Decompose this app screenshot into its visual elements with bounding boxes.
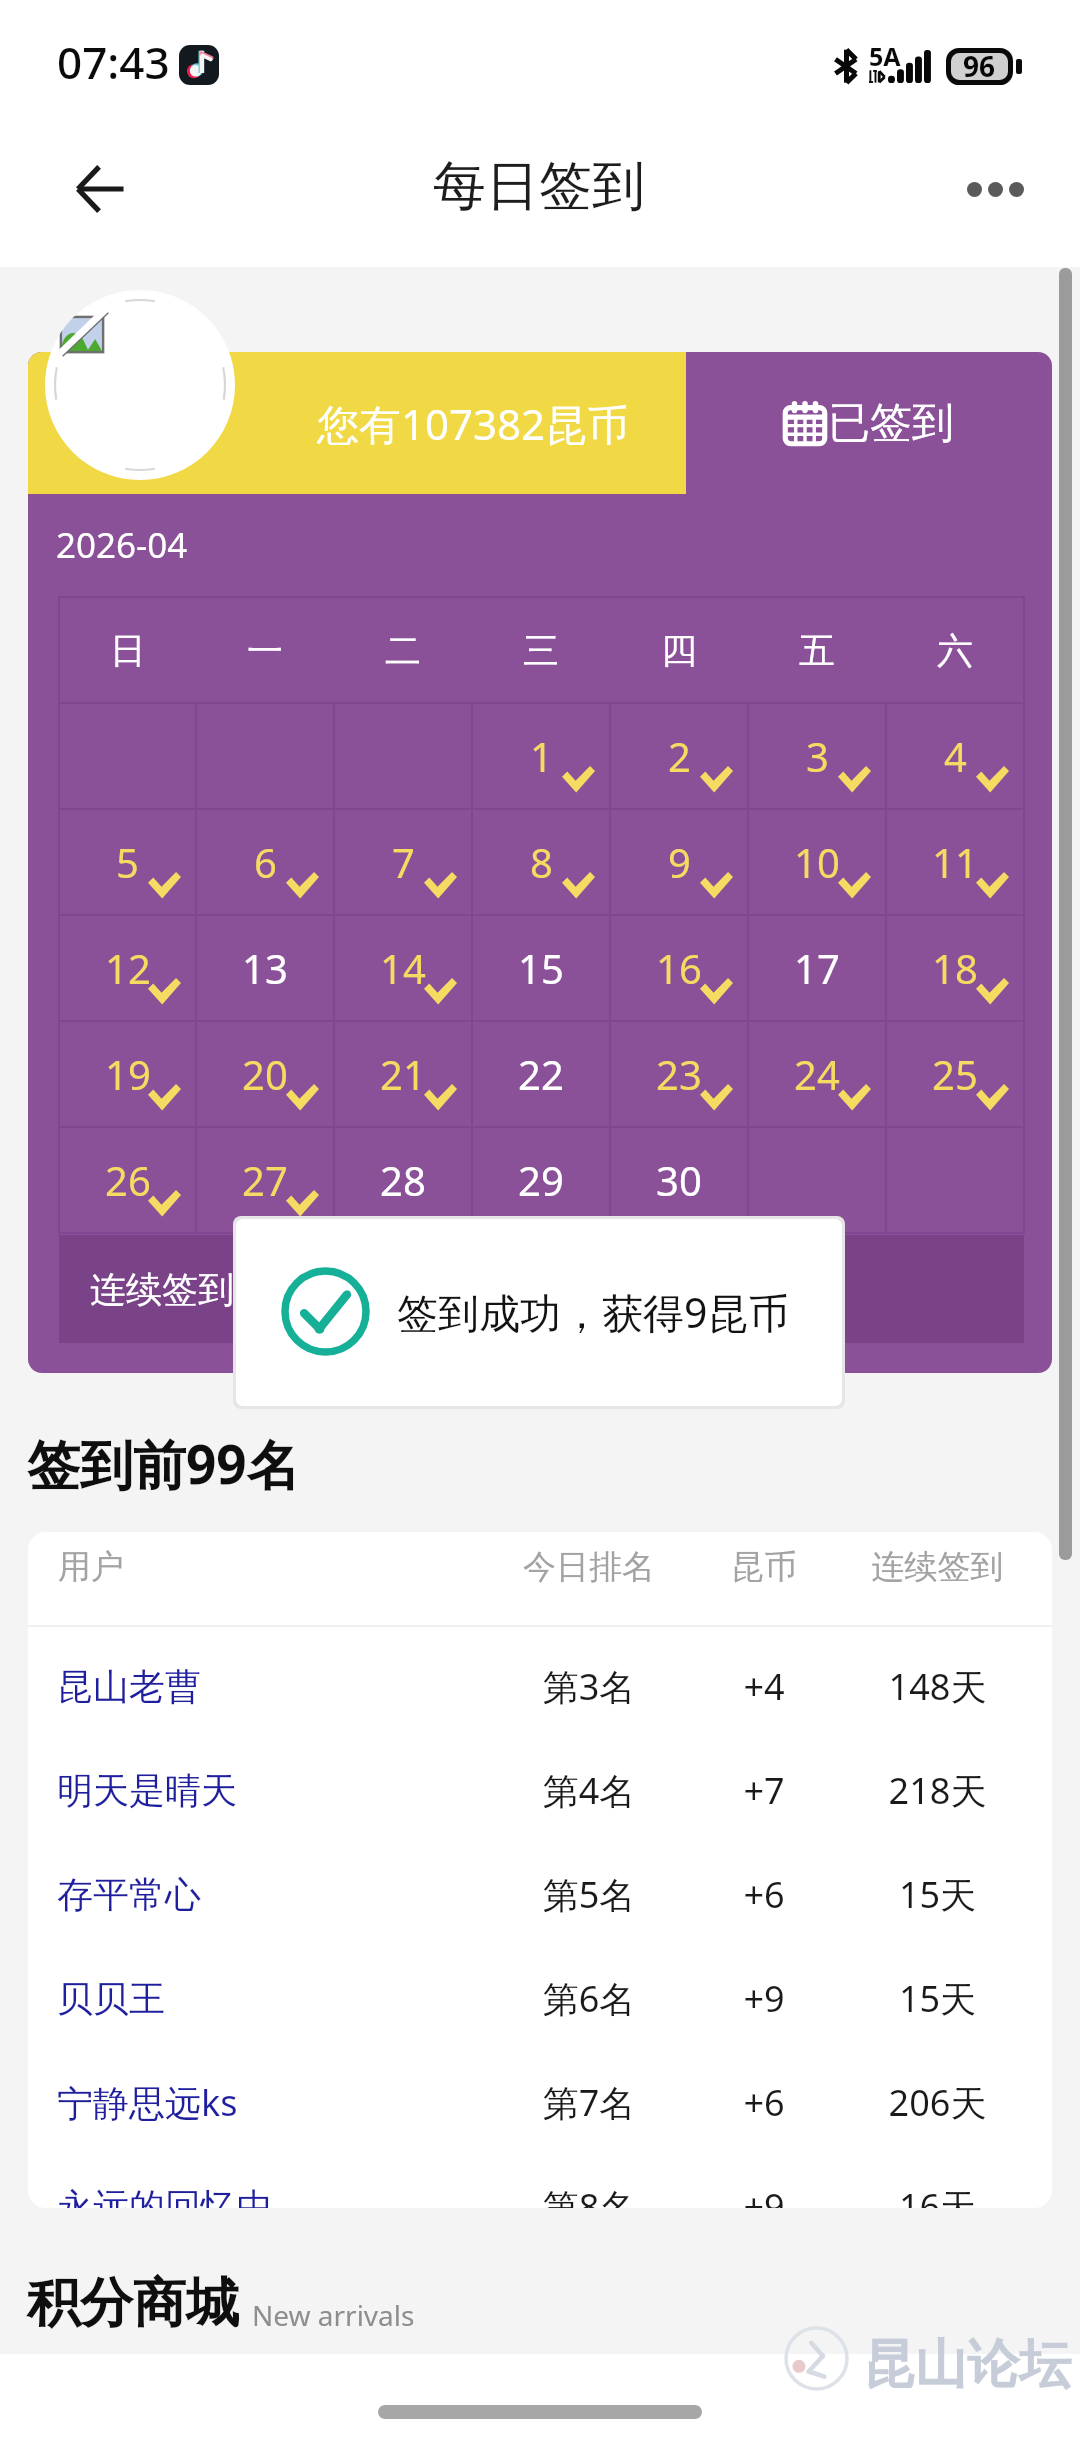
button[interactable]: 26 <box>59 1127 196 1233</box>
staticText: 贝贝王 <box>57 1976 449 2021</box>
staticText: 30 <box>656 1153 702 1207</box>
staticText: 7 <box>392 835 415 889</box>
staticText: 16 <box>656 941 702 995</box>
staticText: 28 <box>380 1153 426 1207</box>
button[interactable]: 20 <box>196 1021 334 1127</box>
button[interactable]: 16 <box>610 915 748 1021</box>
button[interactable]: 3 <box>748 703 886 809</box>
button[interactable]: 18 <box>886 915 1024 1021</box>
button[interactable]: 8 <box>472 809 610 915</box>
staticText: 3 <box>806 729 829 783</box>
staticText: 5 <box>116 835 139 889</box>
button[interactable]: 永远的回忆中 <box>28 2154 1052 2208</box>
button[interactable]: 30 <box>610 1127 748 1233</box>
button[interactable]: 宁静思远ks <box>28 2050 1052 2154</box>
staticText: 1 <box>530 729 553 783</box>
staticText: 第5名 <box>449 1870 729 1919</box>
staticText: 六 <box>937 628 973 673</box>
staticText: 6 <box>254 835 277 889</box>
button[interactable]: 25 <box>886 1021 1024 1127</box>
button[interactable]: 9 <box>610 809 748 915</box>
staticText: 15天 <box>811 1974 1052 2023</box>
button[interactable]: 昆山老曹 <box>28 1634 1052 1738</box>
button[interactable]: 29 <box>472 1127 610 1233</box>
staticText: 148天 <box>811 1662 1052 1711</box>
staticText: 积分商城 <box>27 2270 239 2337</box>
staticText: 20 <box>242 1047 288 1101</box>
staticText: 存平常心 <box>57 1872 449 1917</box>
staticText: 昆山老曹 <box>57 1664 449 1709</box>
button[interactable]: 23 <box>610 1021 748 1127</box>
button[interactable]: 22 <box>472 1021 610 1127</box>
button[interactable]: 17 <box>748 915 886 1021</box>
staticText: 一 <box>247 628 283 673</box>
staticText: 96 <box>963 47 996 84</box>
staticText: 11 <box>932 835 978 889</box>
staticText: 21 <box>380 1047 426 1101</box>
staticText: New arrivals <box>252 2296 415 2334</box>
button[interactable]: 贝贝王 <box>28 1946 1052 2050</box>
staticText: 22 <box>518 1047 564 1101</box>
button[interactable]: 已签到 <box>686 352 1052 494</box>
button[interactable]: 27 <box>196 1127 334 1233</box>
staticText: 第8名 <box>449 2182 729 2208</box>
button[interactable]: Avatar <box>45 290 235 480</box>
staticText: 29 <box>518 1153 564 1207</box>
button[interactable]: 11 <box>886 809 1024 915</box>
staticText: 10 <box>794 835 840 889</box>
staticText: 218天 <box>811 1766 1052 1815</box>
staticText: 14 <box>380 941 426 995</box>
staticText: +6 <box>729 1870 799 1919</box>
staticText: +7 <box>729 1766 799 1815</box>
button[interactable]: 24 <box>748 1021 886 1127</box>
staticText: 15天 <box>811 1870 1052 1919</box>
staticText: 您有107382昆币 <box>317 395 630 452</box>
button[interactable]: 存平常心 <box>28 1842 1052 1946</box>
button[interactable]: 19 <box>59 1021 196 1127</box>
staticText: +6 <box>729 2078 799 2127</box>
button[interactable]: Back <box>40 129 160 249</box>
staticText: 8 <box>530 835 553 889</box>
staticText: 5A <box>869 39 901 73</box>
button[interactable]: 21 <box>334 1021 472 1127</box>
staticText: 第6名 <box>449 1974 729 2023</box>
button[interactable]: 明天是晴天 <box>28 1738 1052 1842</box>
button[interactable]: 4 <box>886 703 1024 809</box>
staticText: 连续签到 <box>90 1267 234 1312</box>
staticText: 昆山论坛 <box>863 2332 1071 2398</box>
staticText: 签到前99名 <box>27 1427 300 1499</box>
button[interactable]: 10 <box>748 809 886 915</box>
staticText: 26 <box>105 1153 151 1207</box>
staticText: 23 <box>656 1047 702 1101</box>
button[interactable]: 2 <box>610 703 748 809</box>
button[interactable]: 6 <box>196 809 334 915</box>
button[interactable]: 14 <box>334 915 472 1021</box>
button[interactable]: 28 <box>334 1127 472 1233</box>
button[interactable]: 1 <box>472 703 610 809</box>
staticText: 17 <box>794 941 840 995</box>
staticText: 19 <box>105 1047 151 1101</box>
staticText: +4 <box>729 1662 799 1711</box>
button[interactable]: 7 <box>334 809 472 915</box>
staticText: 已签到 <box>828 397 954 450</box>
staticText: +9 <box>729 2182 799 2208</box>
button[interactable]: More options <box>940 139 1050 239</box>
staticText: 昆币 <box>729 1546 799 1588</box>
staticText: 2026-04 <box>56 521 188 569</box>
staticText: 25 <box>932 1047 978 1101</box>
button[interactable]: 15 <box>472 915 610 1021</box>
staticText: 2 <box>668 729 691 783</box>
button[interactable]: 12 <box>59 915 196 1021</box>
button[interactable]: 5 <box>59 809 196 915</box>
staticText: 15 <box>518 941 564 995</box>
staticText: 永远的回忆中 <box>57 2184 449 2208</box>
staticText: 9 <box>668 835 691 889</box>
staticText: 07:43 <box>57 32 170 92</box>
staticText: 第7名 <box>449 2078 729 2127</box>
staticText: 用户 <box>58 1546 449 1588</box>
staticText: 27 <box>242 1153 288 1207</box>
staticText: 13 <box>242 941 288 995</box>
staticText: 12 <box>105 941 151 995</box>
staticText: 第3名 <box>449 1662 729 1711</box>
button[interactable]: 13 <box>196 915 334 1021</box>
